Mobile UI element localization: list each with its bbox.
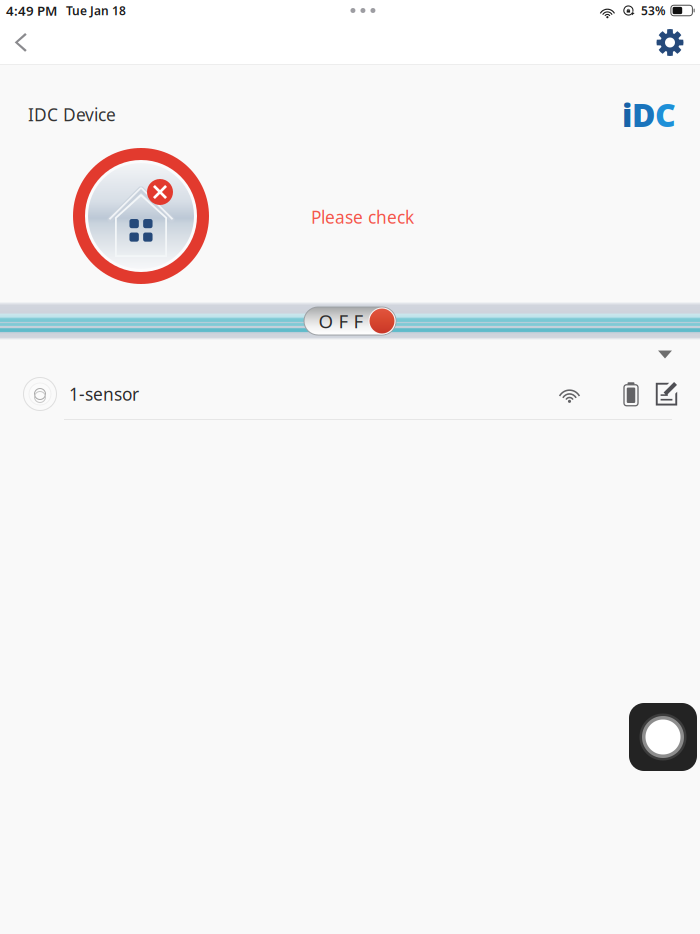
staticText: 1-sensor bbox=[69, 382, 139, 405]
button[interactable]: Settings bbox=[648, 21, 692, 64]
button[interactable]: AssistiveTouch bbox=[629, 703, 697, 771]
staticText: D bbox=[632, 93, 655, 136]
staticText: IDC Device bbox=[28, 103, 116, 126]
staticText: Tue Jan 18 bbox=[66, 2, 126, 18]
staticText: O F F bbox=[318, 309, 363, 333]
staticText: C bbox=[655, 93, 676, 136]
button[interactable]: Back bbox=[0, 21, 42, 64]
staticText: Please check bbox=[311, 205, 414, 228]
staticText: 53% bbox=[641, 2, 666, 18]
staticText: 4:49 PM bbox=[6, 2, 57, 19]
button[interactable]: O F F bbox=[303, 306, 396, 335]
button[interactable]: 1-sensor bbox=[0, 369, 700, 420]
button[interactable]: Expand list bbox=[651, 343, 679, 365]
staticText: i bbox=[622, 93, 632, 136]
